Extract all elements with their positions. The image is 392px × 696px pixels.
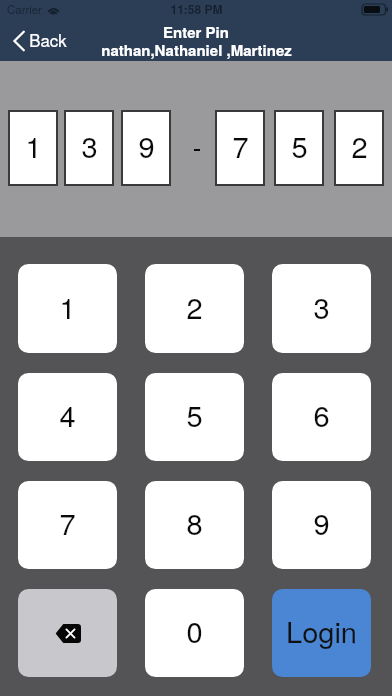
staticText: 5 [291, 125, 308, 167]
staticText: 2 [186, 286, 203, 328]
staticText: nathan,Nathaniel ,Martinez [101, 39, 292, 60]
button[interactable]: 2 [145, 264, 244, 353]
staticText: 8 [186, 502, 203, 544]
button[interactable]: Back [13, 29, 67, 53]
staticText: Back [29, 28, 67, 52]
staticText: 7 [59, 502, 76, 544]
button[interactable]: 4 [18, 373, 117, 461]
staticText: 7 [232, 125, 249, 167]
staticText: 4 [59, 394, 76, 436]
staticText: 1 [59, 286, 76, 328]
staticText: 3 [313, 286, 330, 328]
button[interactable]: 8 [145, 481, 244, 569]
button[interactable]: 6 [272, 373, 371, 461]
button[interactable]: Delete [18, 589, 117, 677]
button[interactable]: 0 [145, 589, 244, 677]
staticText: 0 [186, 610, 203, 652]
staticText: 5 [186, 394, 203, 436]
button[interactable]: 3 [272, 264, 371, 353]
staticText: 11:58 PM [170, 0, 223, 17]
staticText: 2 [351, 125, 368, 167]
staticText: 1 [25, 125, 42, 167]
staticText: Enter Pin [163, 21, 229, 42]
staticText: 9 [313, 502, 330, 544]
button[interactable]: 9 [272, 481, 371, 569]
button[interactable]: Login [272, 589, 371, 677]
staticText: 3 [81, 125, 98, 167]
staticText: 9 [138, 125, 155, 167]
staticText: 6 [313, 394, 330, 436]
staticText: Login [286, 610, 357, 652]
button[interactable]: 7 [18, 481, 117, 569]
staticText: Carrier [7, 1, 42, 17]
button[interactable]: 1 [18, 264, 117, 353]
button[interactable]: 5 [145, 373, 244, 461]
